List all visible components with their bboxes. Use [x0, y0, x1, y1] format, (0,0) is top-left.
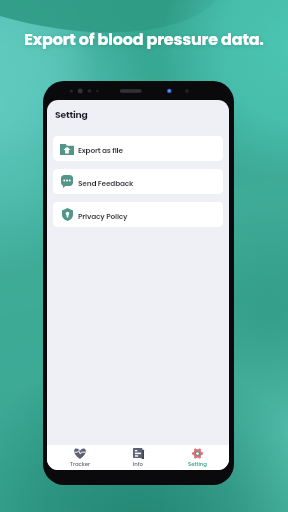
- staticText: Setting: [188, 460, 207, 468]
- button[interactable]: Privacy Policy: [53, 202, 223, 227]
- button[interactable]: Send Feedback: [53, 169, 223, 194]
- button[interactable]: Export as file: [53, 136, 223, 161]
- staticText: Privacy Policy: [78, 211, 128, 221]
- staticText: Info: [133, 460, 143, 468]
- staticText: Setting: [55, 108, 88, 121]
- staticText: Send Feedback: [78, 178, 134, 188]
- button[interactable]: Setting: [171, 445, 223, 470]
- button[interactable]: Tracker: [54, 445, 106, 470]
- button[interactable]: Info: [112, 445, 164, 470]
- staticText: Export as file: [78, 145, 123, 155]
- staticText: Tracker: [70, 460, 91, 468]
- staticText: Export of blood pressure data.: [0, 28, 288, 50]
